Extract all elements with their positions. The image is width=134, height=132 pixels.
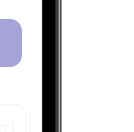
button[interactable]: Card — [0, 19, 22, 67]
staticText: n i — [0, 117, 15, 132]
button[interactable]: Card — [0, 105, 26, 132]
